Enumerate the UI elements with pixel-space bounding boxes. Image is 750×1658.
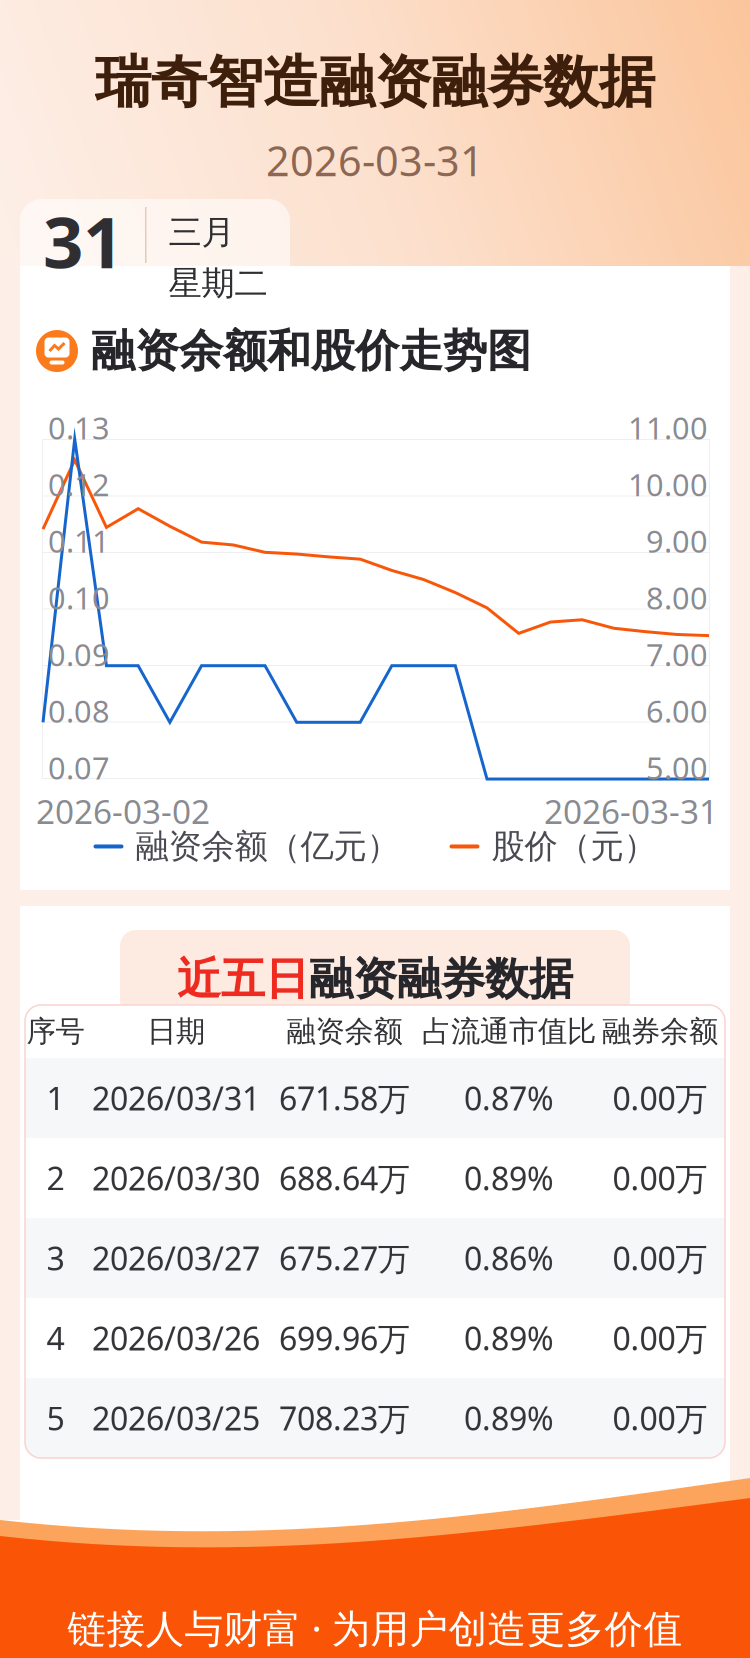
staticText: 0.00万 [612,1317,707,1359]
staticText: 0.08 [48,691,110,731]
staticText: 31 [43,194,123,288]
staticText: 2026/03/31 [92,1077,260,1119]
staticText: 5 [46,1397,64,1439]
staticText: 三月 [168,212,234,253]
staticText: 融资余额 [286,1013,402,1049]
staticText: 6.00 [646,691,708,731]
staticText: 占流通市值比 [422,1013,596,1049]
staticText: 融资余额和股价走势图 [91,324,531,378]
staticText: 0.12 [48,464,110,505]
staticText: 9.00 [646,521,708,561]
staticText: 708.23万 [279,1397,410,1439]
staticText: 0.00万 [612,1237,707,1279]
staticText: 0.00万 [612,1157,707,1199]
staticText: 675.27万 [279,1237,410,1279]
staticText: 0.00万 [612,1077,707,1119]
staticText: 2026-03-02 [36,789,210,833]
staticText: 688.64万 [279,1157,410,1199]
staticText: 0.09 [48,634,110,675]
staticText: 699.96万 [279,1317,410,1359]
staticText: 5.00 [646,747,708,788]
staticText: 2026/03/30 [92,1157,260,1199]
staticText: 3 [46,1237,64,1279]
staticText: 0.10 [48,577,110,618]
staticText: 2026/03/25 [92,1397,260,1439]
staticText: 0.00万 [612,1397,707,1439]
staticText: 0.89% [464,1397,554,1439]
staticText: 序号 [26,1013,84,1049]
staticText: 2 [46,1157,64,1199]
staticText: 日期 [147,1013,205,1049]
staticText: 星期二 [168,263,267,304]
staticText: 2026/03/27 [92,1237,260,1279]
staticText: 股价（元） [491,826,656,867]
staticText: 2026-03-31 [266,133,484,188]
staticText: 0.89% [464,1157,554,1199]
staticText: 0.13 [48,407,110,448]
staticText: 4 [46,1317,64,1359]
staticText: 融资融券数据 [309,952,573,1006]
staticText: 11.00 [628,407,708,448]
staticText: 0.11 [48,521,110,561]
staticText: 0.89% [464,1317,554,1359]
staticText: 671.58万 [279,1077,410,1119]
staticText: 融券余额 [602,1013,718,1049]
staticText: 8.00 [646,577,708,618]
staticText: 2026/03/26 [92,1317,260,1359]
staticText: 瑞奇智造融资融券数据 [95,48,655,117]
staticText: 0.87% [464,1077,554,1119]
staticText: 融资余额（亿元） [135,826,399,867]
staticText: 0.86% [464,1237,554,1279]
staticText: 10.00 [628,464,708,505]
staticText: 7.00 [646,634,708,675]
staticText: 0.07 [48,747,110,788]
staticText: 2026-03-31 [544,789,718,833]
staticText: 1 [46,1077,64,1119]
staticText: 链接人与财富 · 为用户创造更多价值 [67,1602,682,1653]
staticText: 近五日 [177,952,309,1006]
